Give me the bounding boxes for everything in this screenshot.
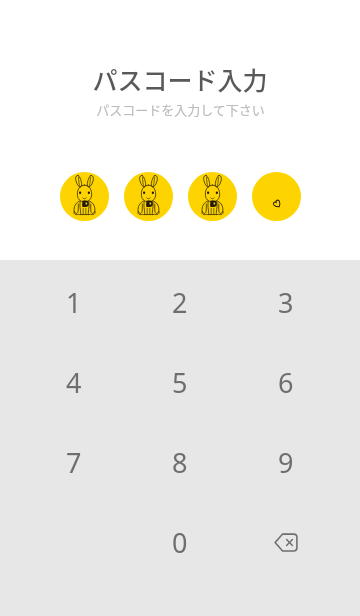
staticText: 8: [172, 444, 188, 481]
other: Backspace: [274, 533, 298, 552]
button[interactable]: [60, 172, 109, 221]
button[interactable]: 6: [233, 342, 339, 422]
button[interactable]: 3: [233, 262, 339, 342]
button[interactable]: 4: [21, 342, 127, 422]
button[interactable]: [124, 172, 173, 221]
staticText: 9: [278, 444, 294, 481]
button[interactable]: 9: [233, 422, 339, 502]
button[interactable]: Backspace: [233, 502, 339, 582]
staticText: 7: [66, 444, 82, 481]
button[interactable]: 2: [127, 262, 233, 342]
button[interactable]: 0: [127, 502, 233, 582]
button[interactable]: 1: [21, 262, 127, 342]
button[interactable]: 8: [127, 422, 233, 502]
staticText: パスコードを入力して下さい: [96, 100, 265, 119]
staticText: 3: [278, 284, 294, 321]
staticText: 1: [66, 284, 82, 321]
button[interactable]: [188, 172, 237, 221]
staticText: 5: [172, 364, 188, 401]
staticText: 2: [172, 284, 188, 321]
staticText: 6: [278, 364, 294, 401]
staticText: パスコード入力: [92, 61, 268, 97]
staticText: 4: [66, 364, 82, 401]
button[interactable]: [252, 172, 301, 221]
button[interactable]: 7: [21, 422, 127, 502]
staticText: 0: [172, 524, 188, 561]
button[interactable]: 5: [127, 342, 233, 422]
